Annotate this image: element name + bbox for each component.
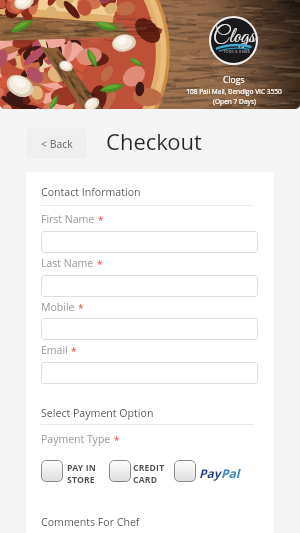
staticText: CARD [133,474,158,486]
staticText: * [97,257,103,271]
staticText: Clogs [213,24,255,50]
staticText: * [114,433,120,447]
staticText: CREDIT [133,462,165,474]
button[interactable]: First Name [41,231,258,253]
staticText: Last Name [41,256,94,270]
button[interactable]: PayPal [174,460,196,482]
staticText: Clogs [223,74,245,86]
staticText: Mobile [41,300,75,314]
staticText: Select Payment Option [41,406,154,420]
staticText: * [71,344,77,358]
staticText: Contact Information [41,185,141,199]
staticText: Email [41,343,68,357]
staticText: FOOD & DRINK [224,50,251,54]
button[interactable]: Email [41,362,258,384]
staticText: Pay [199,465,221,481]
staticText: Email [41,343,68,357]
button[interactable]: Pay [199,465,240,481]
staticText: 108 Pall Mall, Bendigo VIC 3550 [186,87,282,96]
button[interactable]: Mobile [41,318,258,340]
staticText: STORE [67,474,95,486]
staticText: (Open 7 Days) [213,97,256,106]
button[interactable]: < Back [26,128,87,159]
staticText: First Name [41,212,95,226]
staticText: Last Name [41,256,94,270]
staticText: Mobile [41,300,75,314]
staticText: < Back [41,137,73,151]
staticText: Checkout [106,126,202,156]
staticText: * [78,301,84,315]
button[interactable]: Pay in store [41,460,63,482]
staticText: First Name [41,212,95,226]
staticText: Payment Type [41,432,111,446]
staticText: PAY IN [67,462,97,474]
button[interactable]: Credit card [109,460,131,482]
staticText: Pal [221,465,240,481]
staticText: Payment Type [41,432,111,446]
button[interactable]: Last Name [41,275,258,297]
staticText: Comments For Chef [41,515,140,529]
staticText: * [98,213,104,227]
